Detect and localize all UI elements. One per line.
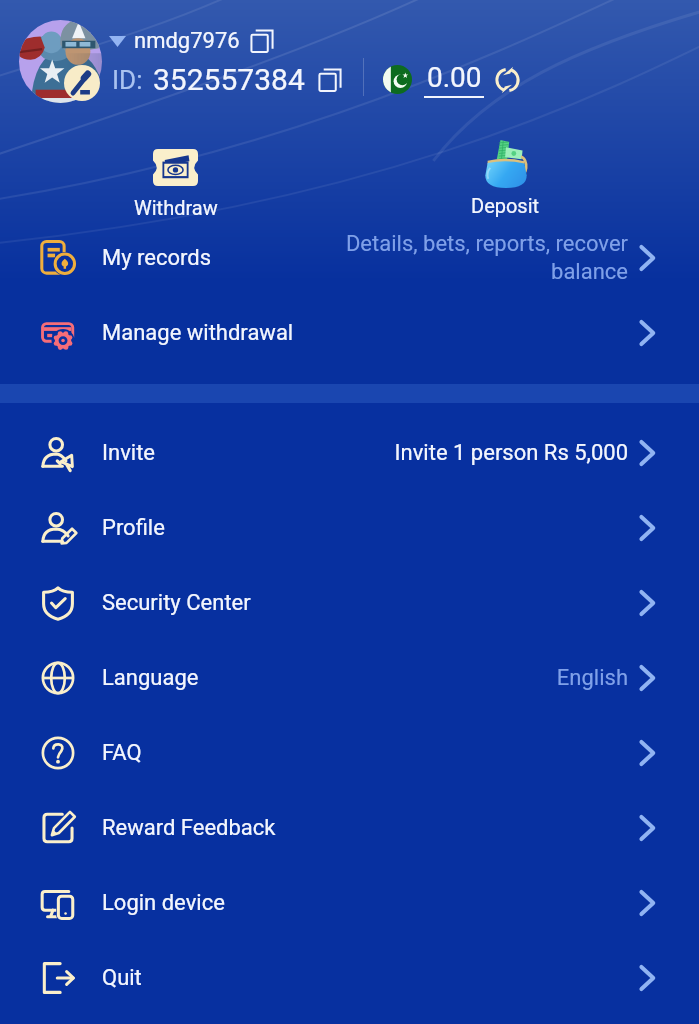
button[interactable]: Quit [0, 940, 699, 1015]
button[interactable]: Login device [0, 865, 699, 940]
staticText: Invite 1 person Rs 5,000 [378, 440, 628, 466]
staticText: Language [102, 665, 199, 691]
staticText: Invite [102, 440, 156, 466]
staticText: My records [102, 245, 212, 271]
staticText: Profile [102, 515, 165, 541]
button[interactable]: Profile avatar [19, 20, 102, 103]
button[interactable]: FAQ [0, 715, 699, 790]
staticText: Deposit [471, 194, 540, 217]
other: Copy username [250, 28, 274, 54]
other: Refresh balance [495, 66, 520, 94]
staticText: 0.00 [427, 61, 482, 94]
staticText: Details, bets, reports, recover balance [338, 231, 628, 285]
other: Copy ID [318, 67, 342, 93]
staticText: 352557384 [153, 62, 305, 97]
staticText: Withdraw [134, 196, 218, 219]
staticText: Quit [102, 965, 142, 991]
staticText: FAQ [102, 740, 142, 766]
button[interactable]: Withdraw [128, 149, 223, 219]
button[interactable]: Reward Feedback [0, 790, 699, 865]
staticText: Login device [102, 890, 225, 916]
button[interactable]: nmdg7976 [109, 28, 274, 54]
staticText: nmdg7976 [134, 28, 240, 54]
button[interactable]: Language [0, 640, 699, 715]
button[interactable]: 0.00 [383, 61, 520, 98]
button[interactable]: My records [0, 220, 699, 295]
button[interactable]: Profile [0, 490, 699, 565]
button[interactable]: ID: [112, 62, 342, 97]
button[interactable]: Invite [0, 415, 699, 490]
button[interactable]: Deposit [458, 141, 553, 217]
staticText: Manage withdrawal [102, 320, 294, 346]
staticText: Security Center [102, 590, 251, 616]
staticText: ID: [112, 65, 143, 95]
staticText: English [518, 665, 628, 691]
button[interactable]: Security Center [0, 565, 699, 640]
staticText: Reward Feedback [102, 815, 276, 841]
button[interactable]: Manage withdrawal [0, 295, 699, 370]
